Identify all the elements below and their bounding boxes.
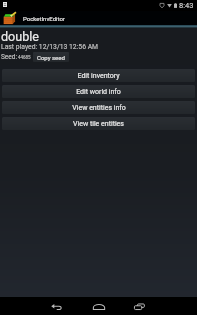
staticText: Seed:: [1, 53, 17, 61]
staticText: Edit inventory: [77, 72, 120, 80]
button[interactable]: View entities info: [2, 101, 195, 114]
button[interactable]: Edit inventory: [2, 69, 195, 82]
staticText: View tile entities: [73, 120, 124, 128]
staticText: 8:43: [179, 1, 194, 10]
staticText: Last played: 12/13/13 12:56 AM: [1, 43, 99, 51]
staticText: double: [1, 29, 40, 44]
staticText: PocketInvEditor: [23, 15, 65, 22]
button[interactable]: Back: [47, 299, 66, 313]
button[interactable]: View tile entities: [2, 117, 195, 130]
button[interactable]: Recent apps: [130, 299, 149, 313]
staticText: View entities info: [72, 104, 126, 112]
button[interactable]: Copy seed: [33, 52, 69, 62]
staticText: 44685: [18, 55, 31, 60]
staticText: Edit world info: [76, 88, 121, 96]
button[interactable]: Home: [89, 299, 108, 313]
button[interactable]: Edit world info: [2, 85, 195, 98]
staticText: Copy seed: [37, 54, 65, 61]
